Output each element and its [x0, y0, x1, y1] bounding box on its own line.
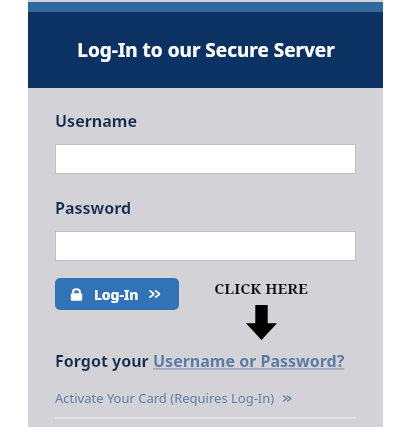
staticText: Username — [55, 110, 137, 132]
button[interactable]: Click here to log in — [246, 305, 277, 340]
button[interactable]: Username or Password? — [153, 350, 345, 372]
staticText: Username or Password? — [153, 350, 345, 372]
staticText: Activate Your Card (Requires Log-In) — [55, 389, 275, 407]
staticText: Password — [55, 197, 132, 219]
staticText: Forgot your — [55, 350, 153, 372]
staticText: CLICK HERE — [214, 278, 308, 298]
staticText: Log-In — [94, 285, 139, 304]
button[interactable]: Activate Your Card (Requires Log-In) — [55, 389, 293, 407]
button[interactable]: Log-In — [55, 278, 179, 310]
staticText: Log-In to our Secure Server — [77, 37, 335, 63]
